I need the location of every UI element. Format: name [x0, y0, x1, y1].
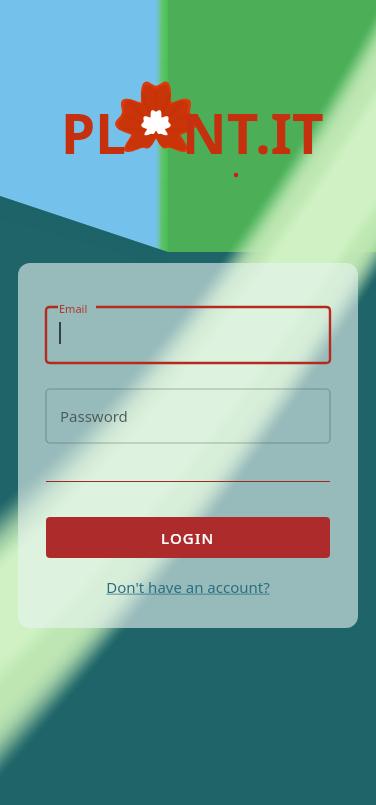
staticText: Don't have an account? [106, 577, 270, 597]
button[interactable] [46, 307, 330, 363]
staticText: Email [59, 301, 88, 316]
staticText: LOGIN [161, 528, 215, 548]
button[interactable]: Don't have an account? [86, 575, 290, 599]
button[interactable]: Password [46, 389, 330, 443]
staticText: NT.IT [182, 95, 324, 170]
staticText: Password [60, 406, 128, 426]
button[interactable]: LOGIN [46, 517, 330, 558]
staticText: PL [61, 95, 126, 170]
